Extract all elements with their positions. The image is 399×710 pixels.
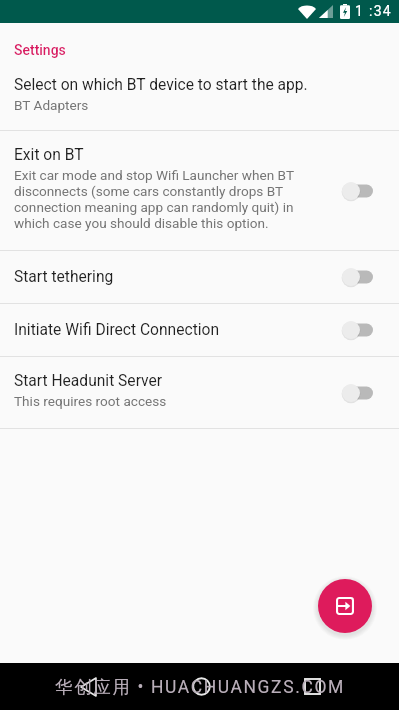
staticText: This requires root access: [14, 393, 167, 409]
button[interactable]: Start tethering: [0, 251, 399, 303]
button[interactable]: Launch app: [318, 579, 372, 633]
button[interactable]: Back: [66, 663, 110, 710]
staticText: Settings: [14, 42, 66, 58]
staticText: 华创应用 • HUACHUANGZS.COM: [55, 676, 345, 698]
button[interactable]: Toggle: [342, 265, 385, 289]
staticText: Select on which BT device to start the a…: [14, 76, 308, 94]
staticText: BT Adapters: [14, 97, 89, 113]
staticText: 1 :34: [355, 3, 392, 19]
staticText: Start tethering: [14, 268, 114, 286]
button[interactable]: Home: [179, 663, 223, 710]
button[interactable]: Toggle: [342, 381, 385, 405]
button[interactable]: Select on which BT device to start the a…: [0, 68, 399, 130]
button[interactable]: Toggle: [342, 179, 385, 203]
button[interactable]: Exit on BT: [0, 131, 399, 250]
staticText: Exit on BT: [14, 146, 84, 164]
staticText: Initiate Wifi Direct Connection: [14, 321, 220, 339]
staticText: Exit car mode and stop Wifi Launcher whe…: [14, 167, 331, 231]
button[interactable]: Initiate Wifi Direct Connection: [0, 304, 399, 356]
button[interactable]: Start Headunit Server: [0, 357, 399, 428]
staticText: Start Headunit Server: [14, 372, 163, 390]
button[interactable]: Recent apps: [290, 663, 334, 710]
button[interactable]: Toggle: [342, 318, 385, 342]
